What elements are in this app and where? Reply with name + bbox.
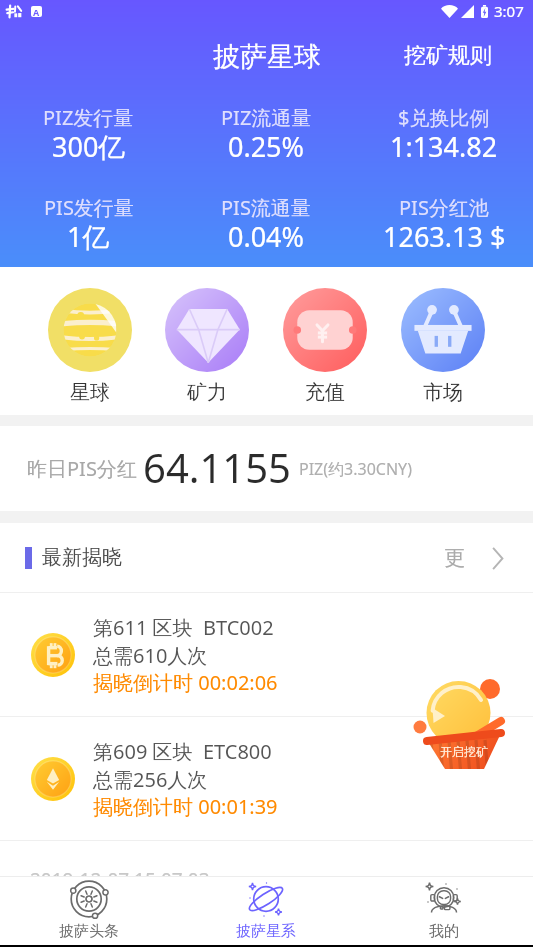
staticText: 充值: [305, 380, 345, 405]
button[interactable]: 昨日PIS分红: [0, 426, 533, 511]
staticText: PIS流通量: [221, 194, 311, 221]
staticText: 64.1155: [143, 440, 291, 494]
staticText: PIS发行量: [44, 194, 134, 221]
staticText: 揭晓倒计时 00:01:39: [93, 793, 278, 820]
button[interactable]: 矿力: [148, 267, 266, 415]
staticText: 矿力: [187, 380, 227, 405]
staticText: 总需610人次: [93, 642, 208, 669]
staticText: 总需256人次: [93, 766, 208, 793]
staticText: A: [33, 6, 40, 17]
staticText: 1:134.82: [390, 128, 498, 165]
button[interactable]: 第609 区块 ETC800: [0, 717, 533, 840]
staticText: 1263.13 $: [383, 218, 506, 255]
staticText: PIZ流通量: [221, 104, 312, 131]
button[interactable]: 开启挖矿: [405, 660, 515, 770]
staticText: 第611 区块 BTC002: [93, 614, 274, 641]
staticText: 第609 区块 ETC800: [93, 738, 272, 765]
staticText: 最新揭晓: [42, 545, 122, 570]
button[interactable]: 市场: [384, 267, 502, 415]
staticText: PIZ(约3.30CNY): [299, 458, 412, 480]
staticText: 揭晓倒计时 00:02:06: [93, 669, 278, 696]
button[interactable]: 更: [422, 545, 533, 571]
staticText: 披萨星系: [236, 922, 296, 941]
staticText: 1亿: [67, 218, 110, 255]
button[interactable]: 充值: [266, 267, 384, 415]
button[interactable]: 我的: [355, 877, 533, 945]
staticText: 0.04%: [228, 218, 305, 255]
staticText: 0.25%: [228, 128, 305, 165]
staticText: 我的: [429, 922, 459, 941]
staticText: 更: [444, 545, 465, 571]
button[interactable]: 披萨星系: [177, 877, 355, 945]
staticText: 披萨头条: [59, 922, 119, 941]
staticText: 300亿: [52, 128, 126, 165]
staticText: 2019-12-07 15:07:03: [30, 867, 210, 893]
button[interactable]: 第611 区块 BTC002: [0, 593, 533, 716]
staticText: PIZ发行量: [43, 104, 134, 131]
staticText: $兑换比例: [398, 104, 490, 131]
button[interactable]: 星球: [31, 267, 148, 415]
staticText: 市场: [423, 380, 463, 405]
button[interactable]: 披萨头条: [0, 877, 177, 945]
staticText: 3:07: [494, 1, 524, 21]
staticText: 星球: [70, 380, 110, 405]
staticText: 披萨星球: [213, 40, 321, 74]
staticText: 昨日PIS分红: [27, 455, 137, 482]
staticText: 开启挖矿: [440, 744, 488, 759]
staticText: 挖矿规则: [404, 42, 492, 70]
staticText: PIS分红池: [399, 194, 489, 221]
